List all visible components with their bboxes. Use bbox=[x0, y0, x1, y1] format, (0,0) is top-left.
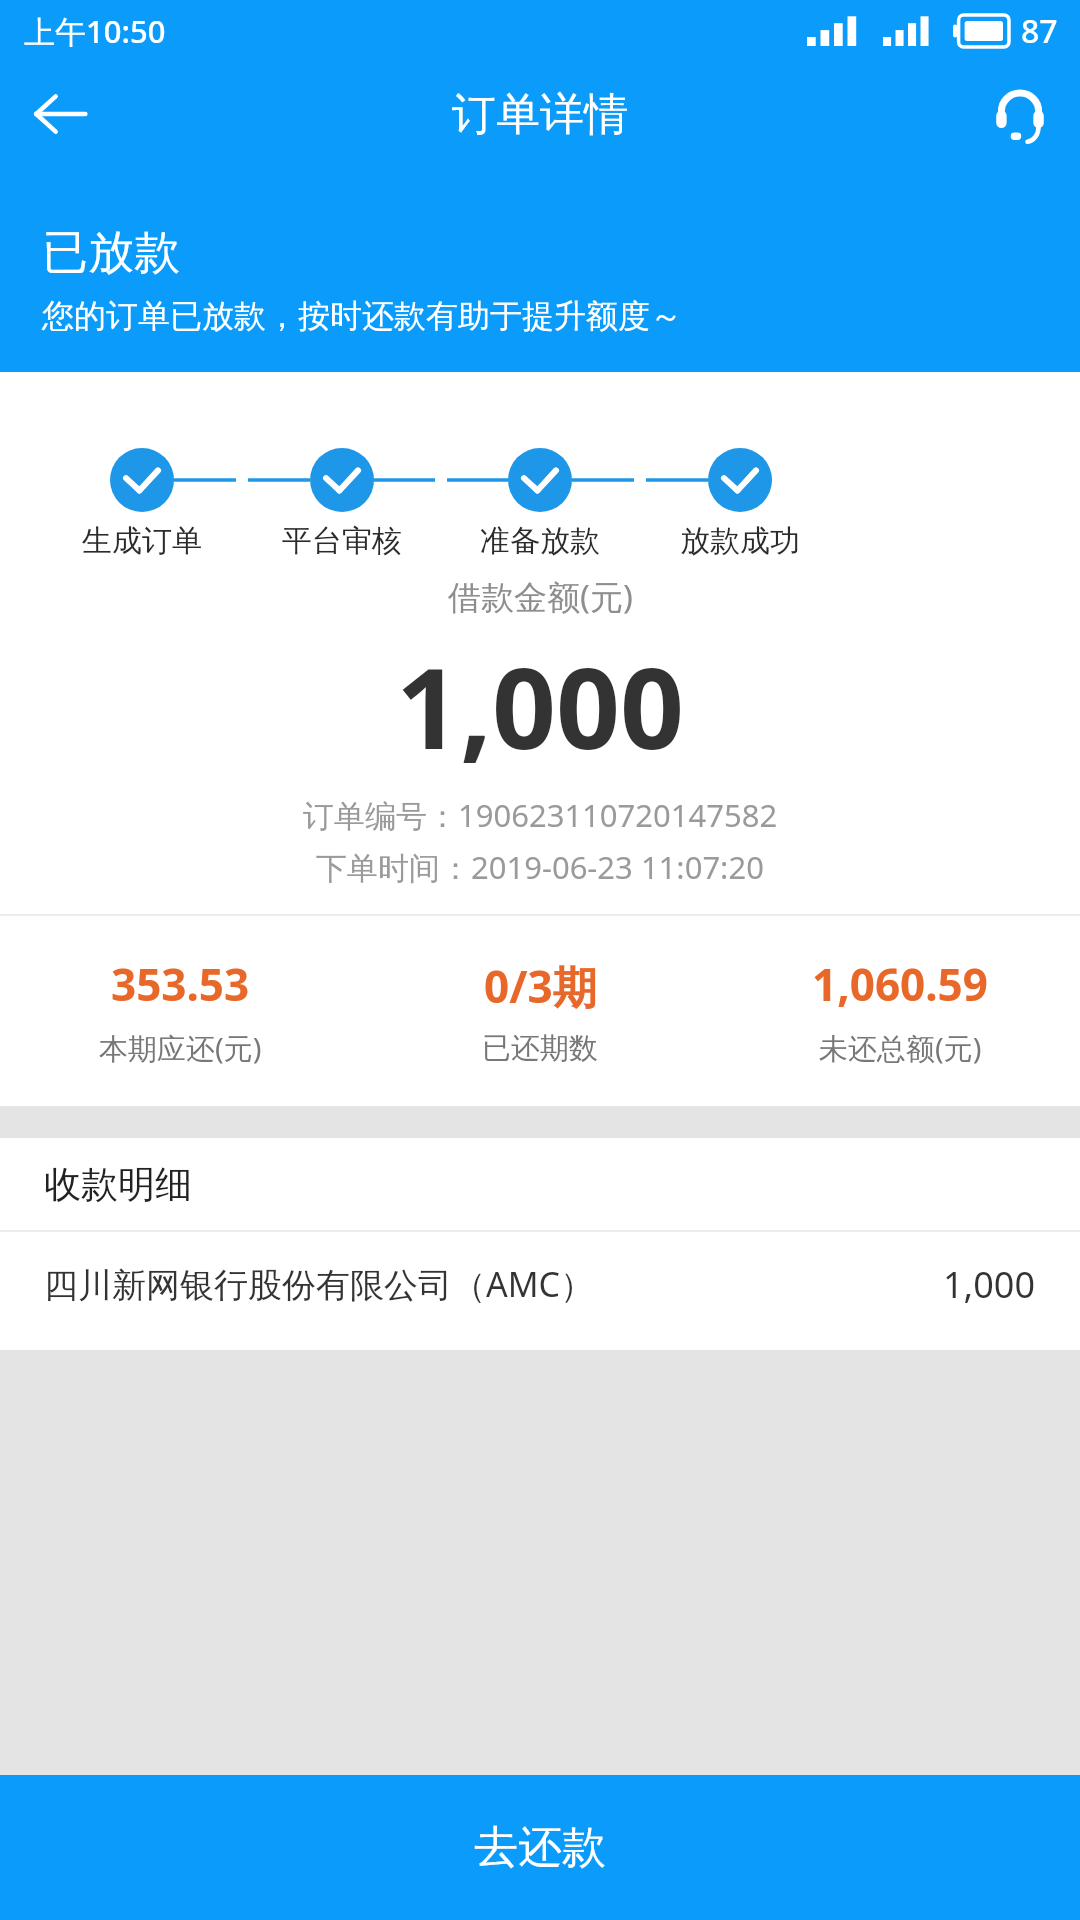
staticText: 生成订单 bbox=[42, 522, 242, 560]
staticText: 353.53 bbox=[111, 954, 250, 1014]
staticText: 借款金额(元) bbox=[448, 574, 633, 619]
staticText: 87 bbox=[1021, 9, 1058, 53]
staticText: 订单编号：190623110720147582 bbox=[303, 794, 778, 836]
button[interactable]: 353.53 bbox=[0, 954, 360, 1068]
staticText: 四川新网银行股份有限公司（AMC） bbox=[44, 1261, 595, 1307]
staticText: 收款明细 bbox=[44, 1161, 192, 1208]
staticText: 1,060.59 bbox=[812, 954, 988, 1014]
staticText: 本期应还(元) bbox=[99, 1028, 262, 1068]
staticText: 去还款 bbox=[474, 1820, 606, 1875]
staticText: 准备放款 bbox=[440, 522, 640, 560]
staticText: 订单详情 bbox=[452, 87, 628, 142]
staticText: 您的订单已放款，按时还款有助于提升额度～ bbox=[42, 296, 682, 336]
button[interactable]: 去还款 bbox=[0, 1775, 1080, 1920]
staticText: 0/3期 bbox=[484, 956, 597, 1016]
button[interactable]: Back bbox=[0, 58, 120, 170]
staticText: 放款成功 bbox=[640, 522, 840, 560]
button[interactable]: 四川新网银行股份有限公司（AMC） bbox=[0, 1232, 1080, 1336]
staticText: 1,000 bbox=[943, 1260, 1036, 1309]
staticText: 已还期数 bbox=[482, 1030, 598, 1067]
staticText: 上午10:50 bbox=[24, 10, 166, 52]
button[interactable]: Customer service bbox=[960, 58, 1080, 170]
staticText: 1,000 bbox=[396, 629, 685, 782]
staticText: 下单时间：2019-06-23 11:07:20 bbox=[316, 846, 764, 888]
button[interactable]: 1,060.59 bbox=[720, 954, 1080, 1068]
staticText: 平台审核 bbox=[242, 522, 442, 560]
button[interactable]: 0/3期 bbox=[360, 956, 720, 1067]
staticText: 已放款 bbox=[42, 224, 180, 282]
staticText: 未还总额(元) bbox=[819, 1028, 982, 1068]
